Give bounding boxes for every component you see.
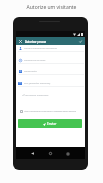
staticText: Nº da pessoa autorizada [22,94,49,97]
button[interactable]: Observação [16,68,85,80]
button[interactable]: Enviar [18,119,82,128]
button[interactable]: Close [17,38,24,45]
staticText: Observação [24,70,37,73]
button[interactable]: Home [47,150,54,157]
button[interactable]: Confirm [77,38,84,45]
staticText: Não é necessário comunicar a chegada des… [24,110,76,113]
staticText: Autorize um visitante [0,4,103,11]
button[interactable]: Nome e sobrenome da pessoa [16,45,85,57]
staticText: Enviar [47,122,57,126]
button[interactable]: Back [29,150,36,157]
staticText: Nome e sobrenome da pessoa [24,47,57,50]
staticText: Autorizar pessoa [25,40,47,43]
button[interactable]: CPF (liberação adicional) [16,80,85,92]
staticText: Frequência da visita [24,59,46,62]
staticText: CPF (liberação adicional) [24,82,51,85]
button[interactable]: Frequência da visita [16,57,85,69]
button[interactable]: Não é necessário comunicar a chegada des… [20,110,84,113]
button[interactable]: Recents [64,150,71,157]
